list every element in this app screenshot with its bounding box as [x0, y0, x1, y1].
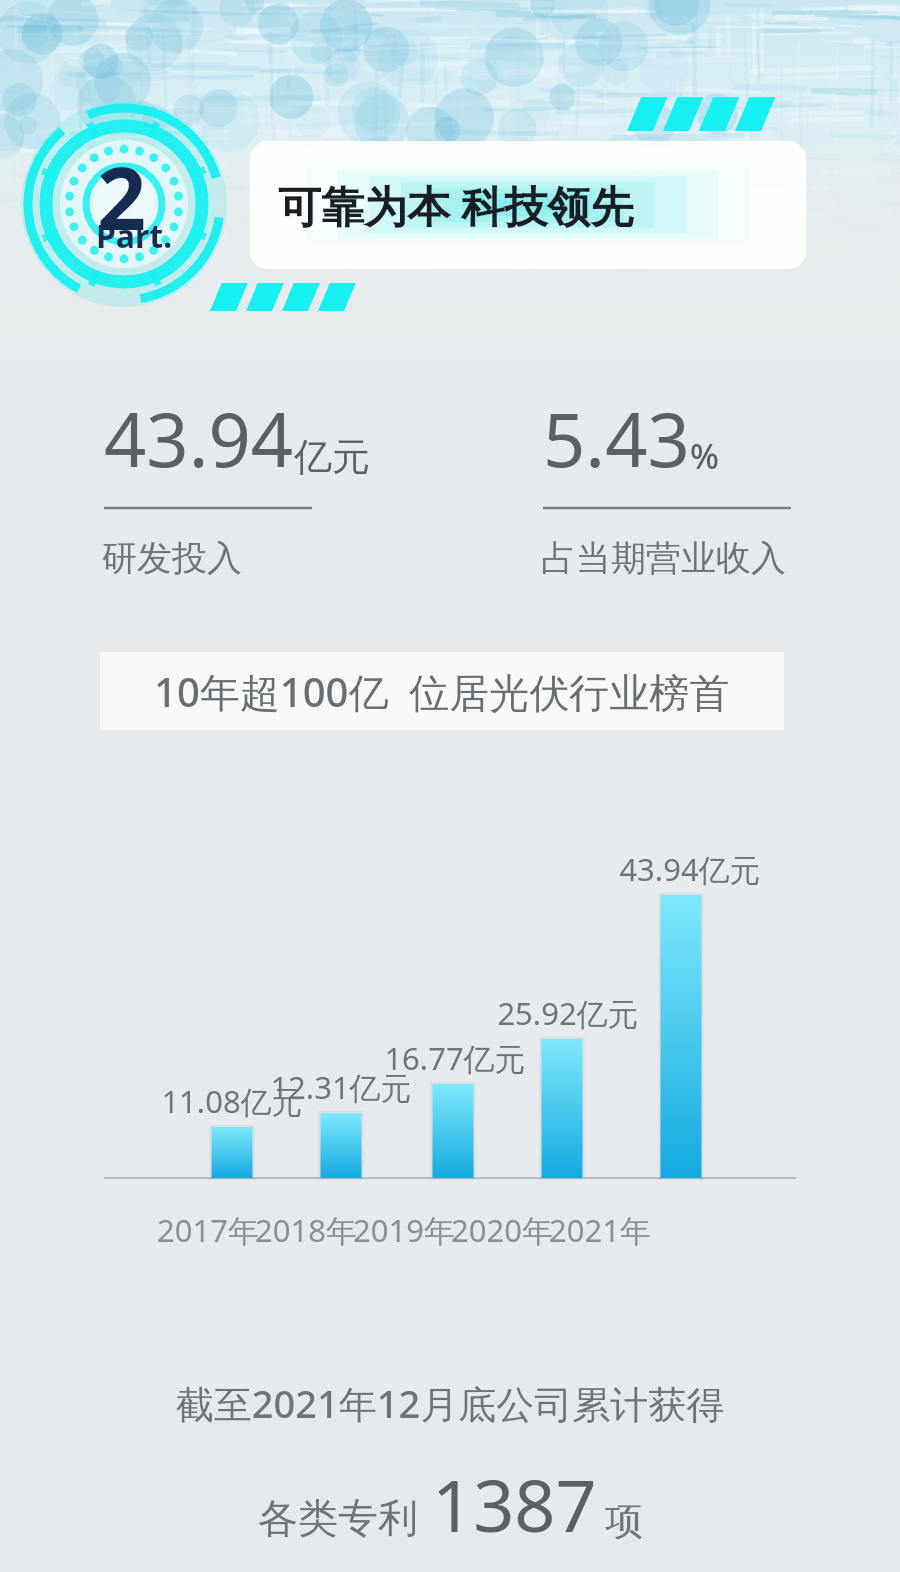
staticText: 截至2021年12月底公司累计获得: [0, 1377, 900, 1429]
other: Part 2 badge: [18, 80, 230, 328]
staticText: 12.31亿元: [270, 1066, 412, 1108]
staticText: %: [690, 433, 719, 479]
staticText: 5.43: [543, 388, 690, 489]
staticText: 亿元: [294, 433, 370, 481]
staticText: 25.92亿元: [497, 992, 639, 1034]
staticText: 2: [97, 138, 147, 255]
staticText: 占当期营业收入: [541, 536, 786, 580]
staticText: 10年超100亿 位居光伏行业榜首: [154, 664, 730, 719]
staticText: 16.77亿元: [384, 1037, 526, 1079]
staticText: 2017年: [157, 1209, 259, 1251]
staticText: 43.94亿元: [619, 848, 761, 890]
staticText: 11.08亿元: [161, 1080, 303, 1122]
staticText: 项: [605, 1497, 643, 1545]
staticText: 可靠为本 科技领先: [278, 176, 634, 235]
staticText: 2021年: [549, 1209, 651, 1251]
staticText: 43.94: [104, 388, 294, 489]
staticText: 1387: [432, 1455, 597, 1553]
staticText: 各类专利: [258, 1493, 418, 1543]
staticText: 2020年: [451, 1209, 553, 1251]
staticText: Part.: [96, 214, 173, 258]
staticText: 2019年: [353, 1209, 455, 1251]
button[interactable]: 可靠为本 科技领先: [250, 141, 806, 269]
staticText: 研发投入: [102, 536, 242, 580]
staticText: 2018年: [255, 1209, 357, 1251]
button[interactable]: 10年超100亿 位居光伏行业榜首: [100, 652, 784, 730]
